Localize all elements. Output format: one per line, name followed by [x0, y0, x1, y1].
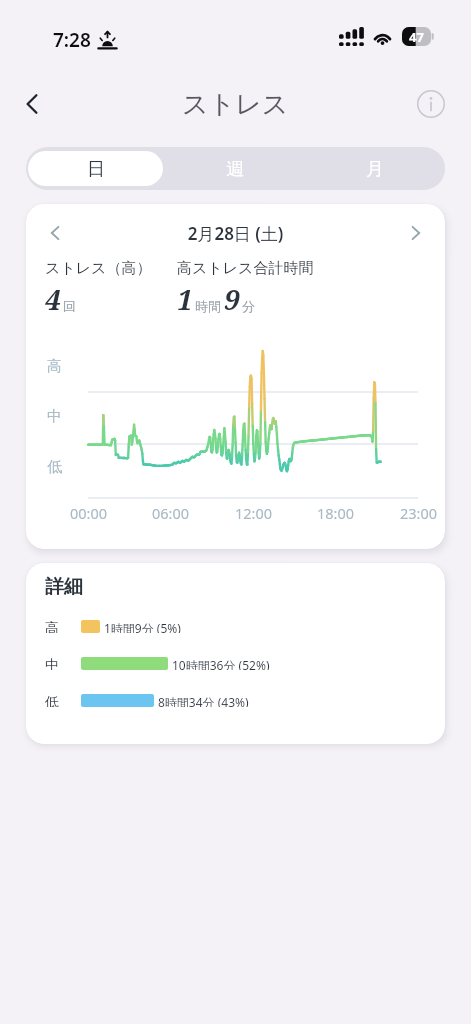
staticText: 18:00 [294, 503, 377, 523]
staticText: 低 [47, 458, 62, 477]
button[interactable]: Back [9, 81, 55, 127]
staticText: 低 [45, 694, 59, 707]
staticText: 9 [224, 280, 240, 318]
staticText: 12:00 [212, 503, 295, 523]
button[interactable]: Previous day [39, 218, 71, 248]
button[interactable]: Information [408, 81, 454, 127]
button[interactable]: 日 [28, 151, 163, 186]
staticText: 00:00 [47, 503, 130, 523]
staticText: 1時間9分 (5%) [104, 620, 181, 633]
staticText: 高 [47, 357, 62, 376]
staticText: ストレス [182, 88, 289, 121]
staticText: 8時間34分 (43%) [158, 694, 249, 707]
staticText: 月 [366, 158, 384, 181]
button[interactable]: 週 [167, 151, 303, 186]
button[interactable]: Next day [400, 218, 432, 248]
staticText: 高 [45, 620, 59, 633]
staticText: 高ストレス合計時間 [177, 259, 314, 278]
staticText: 4 [45, 280, 61, 318]
button[interactable]: 月 [307, 151, 443, 186]
staticText: 週 [226, 158, 244, 181]
staticText: 10時間36分 (52%) [172, 657, 270, 670]
staticText: 時間 [195, 298, 221, 314]
staticText: 23:00 [377, 503, 445, 523]
staticText: 回 [63, 298, 76, 314]
staticText: 中 [45, 657, 59, 670]
staticText: 2月28日 (土) [71, 222, 400, 245]
staticText: 中 [47, 407, 62, 426]
staticText: 日 [87, 158, 105, 181]
staticText: 詳細 [45, 575, 83, 599]
staticText: 1 [177, 280, 193, 318]
staticText: 47 [409, 28, 424, 46]
staticText: 06:00 [129, 503, 212, 523]
staticText: ストレス（高） [45, 259, 152, 278]
staticText: 分 [242, 298, 255, 314]
staticText: 7:28 [53, 27, 91, 53]
